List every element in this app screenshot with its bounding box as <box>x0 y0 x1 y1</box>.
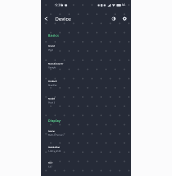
button[interactable]: Name, Built-in Screen <box>41 125 131 141</box>
button[interactable]: Manufacturer, Google <box>41 58 131 74</box>
button[interactable]: Resolution, 1440 x 3120 <box>41 141 131 157</box>
button[interactable]: Back <box>42 13 55 27</box>
button[interactable]: Brand, Pixel <box>41 40 131 56</box>
button[interactable]: Toggle theme <box>107 13 119 27</box>
button[interactable]: Model, Pixel 3 <box>41 93 131 109</box>
button[interactable]: Product, blueline <box>41 75 131 91</box>
button[interactable]: Size, 6.4" <box>41 157 131 173</box>
button[interactable]: Settings <box>118 13 130 27</box>
